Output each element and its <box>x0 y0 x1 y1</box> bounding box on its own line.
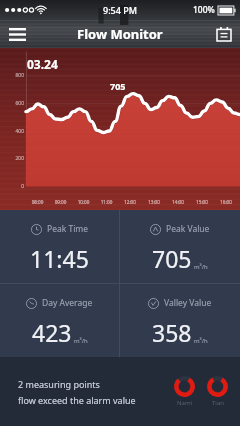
staticText: 705 <box>110 80 126 92</box>
staticText: flow exceed the alarm value <box>18 394 136 406</box>
staticText: 11:45 <box>30 243 89 274</box>
staticText: 09:00 <box>49 199 72 205</box>
staticText: Nami <box>177 399 193 407</box>
staticText: 11:00 <box>95 199 118 205</box>
button[interactable]: Calendar <box>208 20 240 48</box>
staticText: 2 measuring points <box>18 378 100 390</box>
staticText: m³/h <box>74 337 88 345</box>
staticText: m³/h <box>194 263 208 271</box>
staticText: 800 <box>2 72 24 79</box>
staticText: 9:54 PM <box>103 4 137 16</box>
staticText: Flow Monitor <box>77 25 163 43</box>
staticText: 200 <box>2 155 24 162</box>
button[interactable]: Peak Value <box>120 210 240 283</box>
staticText: 13:00 <box>142 199 166 205</box>
button[interactable]: Alarm point Tian <box>207 376 228 407</box>
staticText: Tian <box>212 399 224 407</box>
staticText: 423 <box>32 317 72 348</box>
staticText: 600 <box>2 100 24 107</box>
staticText: 15:00 <box>190 199 214 205</box>
staticText: 14:00 <box>166 199 190 205</box>
staticText: Day Average <box>42 297 93 309</box>
button[interactable]: Day Average <box>0 284 119 357</box>
staticText: 16:00 <box>214 199 238 205</box>
staticText: 0 <box>2 183 24 190</box>
staticText: 100% <box>193 4 215 16</box>
staticText: Valley Value <box>164 297 212 309</box>
staticText: 358 <box>152 317 192 348</box>
button[interactable]: Valley Value <box>120 284 240 357</box>
staticText: 10:00 <box>72 199 95 205</box>
staticText: Peak Time <box>47 223 89 235</box>
staticText: 03.24 <box>27 56 58 72</box>
staticText: 705 <box>152 243 192 274</box>
staticText: 400 <box>2 128 24 135</box>
staticText: m³/h <box>194 337 208 345</box>
staticText: 08:00 <box>26 199 49 205</box>
button[interactable]: Peak Time <box>0 210 119 283</box>
staticText: 12:00 <box>118 199 142 205</box>
staticText: Peak Value <box>166 223 210 235</box>
button[interactable]: Alarm point Nami <box>174 376 195 407</box>
button[interactable]: Menu <box>0 20 34 48</box>
